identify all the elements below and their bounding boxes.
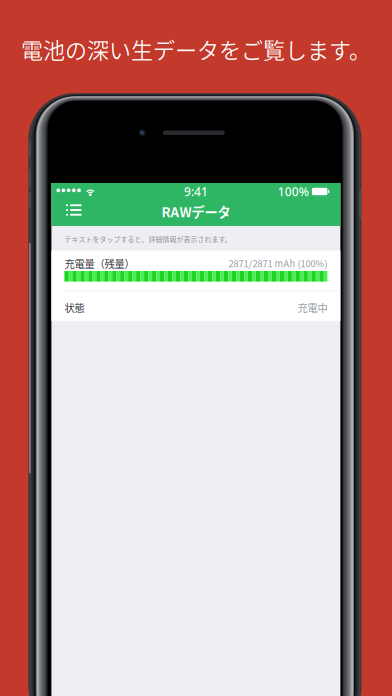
staticText: RAWデータ [161,202,230,221]
staticText: 2871/2871 mAh (100%) [228,256,327,270]
button[interactable]: 充電量（残量） [51,250,340,290]
staticText: 状態 [64,300,84,315]
staticText: 電池の深い生データをご覧します。 [21,33,371,65]
staticText: テキストをタップすると、詳細情報が表示されます。 [65,234,232,244]
button[interactable]: 状態 [51,291,340,321]
staticText: 充電量（残量） [64,256,134,271]
staticText: 充電中 [297,300,327,315]
staticText: 100% [278,183,309,199]
staticText: 9:41 [184,183,208,199]
button[interactable]: Menu [58,197,90,223]
